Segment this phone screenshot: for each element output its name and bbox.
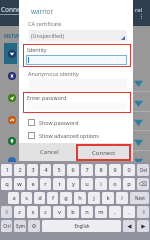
- button[interactable]: .: [123, 206, 135, 218]
- staticText: w: [17, 180, 22, 188]
- button[interactable]: i: [95, 178, 107, 190]
- button[interactable]: 2: [14, 164, 25, 176]
- button[interactable]: Sym: [14, 220, 26, 232]
- button[interactable]: ⇧: [137, 206, 149, 218]
- staticText: b: [71, 208, 75, 216]
- button[interactable]: Wi-Fi: [7, 49, 17, 59]
- button[interactable]: n: [81, 206, 93, 218]
- button[interactable]: w: [14, 178, 25, 190]
- button[interactable]: f: [47, 192, 58, 204]
- button[interactable]: 6: [67, 164, 79, 176]
- button[interactable]: d: [34, 192, 45, 204]
- staticText: Anonymous identity: [28, 70, 79, 77]
- staticText: f: [52, 194, 54, 202]
- button[interactable]: Del: [137, 164, 149, 176]
- button[interactable]: k: [102, 192, 114, 204]
- button[interactable]: h: [74, 192, 86, 204]
- staticText: k: [106, 194, 110, 202]
- staticText: 9: [113, 166, 117, 174]
- staticText: ⚙: [31, 223, 37, 230]
- button[interactable]: v: [53, 206, 65, 218]
- staticText: Connect: [1, 5, 27, 14]
- button[interactable]: t: [53, 178, 65, 190]
- button[interactable]: Data usage: [7, 115, 17, 125]
- button[interactable]: a: [8, 192, 19, 204]
- button[interactable]: Airplane mode: [7, 93, 17, 103]
- staticText: q: [5, 180, 9, 188]
- button[interactable]: 8: [95, 164, 107, 176]
- staticText: i: [100, 180, 102, 188]
- button[interactable]: l: [116, 192, 128, 204]
- button[interactable]: 3: [27, 164, 38, 176]
- staticText: g: [64, 194, 68, 202]
- button[interactable]: e: [27, 178, 38, 190]
- staticText: m: [98, 208, 104, 216]
- button[interactable]: o: [109, 178, 121, 190]
- button[interactable]: Location: [7, 136, 17, 146]
- button[interactable]: j: [88, 192, 100, 204]
- button[interactable]: More options: [141, 14, 142, 20]
- staticText: 8: [99, 166, 103, 174]
- button[interactable]: 9: [109, 164, 121, 176]
- button[interactable]: z: [14, 206, 25, 218]
- button[interactable]: ,: [109, 206, 121, 218]
- staticText: warrior: [31, 7, 54, 16]
- button[interactable]: 5: [53, 164, 65, 176]
- staticText: CA certificate: [28, 20, 62, 27]
- button[interactable]: r: [40, 178, 51, 190]
- button[interactable]: Bluetooth: [7, 71, 17, 81]
- button[interactable]: ▶: [137, 220, 149, 232]
- button[interactable]: ⚙: [28, 220, 40, 232]
- button[interactable]: 0: [123, 164, 135, 176]
- button[interactable]: m: [95, 206, 107, 218]
- staticText: Show password: [39, 119, 79, 126]
- button[interactable]: 7: [81, 164, 93, 176]
- staticText: NETW: [4, 32, 20, 39]
- button[interactable]: (Unspecified): [29, 30, 127, 41]
- staticText: Show advanced options: [39, 132, 99, 139]
- button[interactable]: Next: [130, 192, 149, 204]
- staticText: ral: [135, 6, 143, 14]
- button[interactable]: Show password: [28, 117, 128, 128]
- staticText: Del: [140, 167, 147, 173]
- button[interactable]: 4: [40, 164, 51, 176]
- button[interactable]: ⌫: [137, 178, 149, 190]
- staticText: Sym: [16, 223, 25, 229]
- button[interactable]: 1: [1, 164, 12, 176]
- staticText: Next: [135, 195, 145, 201]
- button[interactable]: Connect: [76, 144, 131, 161]
- button[interactable]: [26, 55, 127, 65]
- staticText: 0: [127, 166, 131, 174]
- staticText: j: [93, 194, 95, 202]
- button[interactable]: Ctrl: [1, 220, 12, 232]
- button[interactable]: More: [7, 156, 17, 166]
- button[interactable]: y: [67, 178, 79, 190]
- staticText: Enter password: [27, 94, 67, 101]
- button[interactable]: q: [1, 178, 12, 190]
- staticText: 6: [71, 166, 75, 174]
- button[interactable]: u: [81, 178, 93, 190]
- button[interactable]: ◀: [123, 220, 135, 232]
- staticText: English: [74, 223, 90, 229]
- button[interactable]: ⇧: [1, 206, 12, 218]
- staticText: 1: [5, 166, 9, 174]
- staticText: ⌫: [139, 181, 147, 188]
- button[interactable]: b: [67, 206, 79, 218]
- staticText: a: [12, 194, 16, 202]
- staticText: (Unspecified): [31, 32, 65, 39]
- staticText: r: [44, 180, 47, 188]
- button[interactable]: p: [123, 178, 135, 190]
- button[interactable]: c: [40, 206, 51, 218]
- button[interactable]: g: [60, 192, 72, 204]
- staticText: c: [44, 208, 47, 216]
- staticText: h: [78, 194, 82, 202]
- button[interactable]: Show advanced options: [28, 130, 128, 141]
- staticText: Ctrl: [3, 223, 11, 229]
- staticText: u: [85, 180, 89, 188]
- button[interactable]: Cancel: [22, 143, 77, 161]
- button[interactable]: English: [42, 220, 121, 232]
- button[interactable]: s: [21, 192, 32, 204]
- button[interactable]: x: [27, 206, 38, 218]
